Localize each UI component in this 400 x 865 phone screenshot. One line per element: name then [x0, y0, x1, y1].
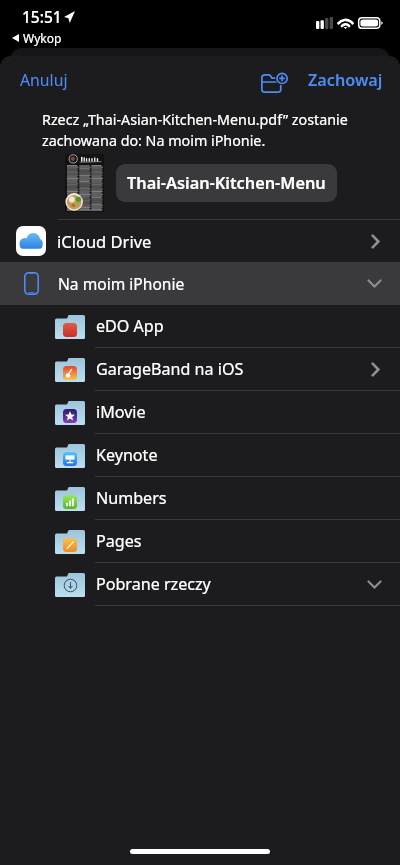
button[interactable]: Numbers	[0, 477, 400, 519]
button[interactable]: Nowy folder	[256, 60, 296, 100]
staticText: Rzecz „Thai-Asian-Kitchen-Menu.pdf” zost…	[42, 110, 382, 150]
staticText: iCloud Drive	[57, 230, 152, 252]
staticText: Pages	[96, 530, 142, 552]
staticText: Pobrane rzeczy	[96, 573, 211, 595]
staticText: Na moim iPhonie	[58, 273, 185, 294]
button[interactable]: Anuluj	[0, 60, 88, 100]
button[interactable]: Zachowaj	[296, 60, 400, 100]
staticText: Keynote	[96, 444, 158, 466]
button[interactable]: Thai-Asian-Kitchen-Menu	[116, 164, 337, 202]
button[interactable]: iCloud Drive	[0, 220, 400, 262]
button[interactable]: iMovie	[0, 391, 400, 433]
button[interactable]: GarageBand na iOS	[0, 348, 400, 390]
button[interactable]: Keynote	[0, 434, 400, 476]
button[interactable]: Pages	[0, 520, 400, 562]
button[interactable]: Pobrane rzeczy	[0, 563, 400, 605]
staticText: Thai-Asian-Kitchen-Menu	[127, 172, 326, 194]
button[interactable]: eDO App	[0, 305, 400, 347]
staticText: Wykop	[23, 30, 62, 46]
staticText: Zachowaj	[308, 69, 383, 91]
staticText: Numbers	[96, 487, 167, 509]
staticText: GarageBand na iOS	[96, 358, 244, 380]
button[interactable]: Na moim iPhonie	[0, 262, 400, 305]
staticText: eDO App	[96, 315, 164, 337]
staticText: 15:51	[22, 6, 62, 27]
staticText: iMovie	[96, 401, 146, 423]
staticText: Anuluj	[20, 69, 68, 91]
